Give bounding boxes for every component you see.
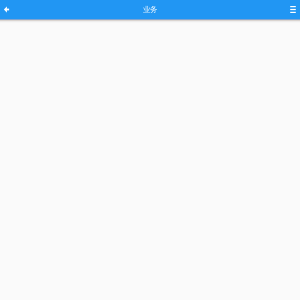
- staticText: 业务: [143, 5, 157, 14]
- button[interactable]: Menu: [286, 0, 300, 19]
- button[interactable]: Back: [0, 0, 14, 19]
